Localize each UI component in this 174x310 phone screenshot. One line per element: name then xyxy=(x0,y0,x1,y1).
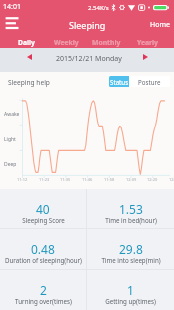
staticText: Awake xyxy=(4,111,20,118)
button[interactable]: 1 xyxy=(87,270,174,310)
staticText: 11:35 xyxy=(60,177,71,182)
staticText: Sleeping xyxy=(69,19,106,31)
button[interactable]: Monthly xyxy=(86,36,127,48)
staticText: 11:58 xyxy=(104,177,115,182)
staticText: 2.54K/s xyxy=(88,4,109,12)
button[interactable]: Menu xyxy=(0,14,24,36)
staticText: 12:09 xyxy=(126,177,137,182)
staticText: 29.8 xyxy=(119,241,143,257)
staticText: Yearly xyxy=(137,38,158,47)
staticText: Monthly xyxy=(92,38,121,47)
staticText: 40 xyxy=(36,201,50,217)
staticText: Turning over(times) xyxy=(15,297,72,305)
staticText: 0.48 xyxy=(31,241,55,257)
staticText: 14:01 xyxy=(3,2,21,12)
staticText: Deep xyxy=(4,161,17,168)
staticText: 2 xyxy=(40,282,47,298)
staticText: Weekly xyxy=(54,38,79,47)
button[interactable]: 40 xyxy=(0,189,86,228)
staticText: Light xyxy=(4,136,16,143)
button[interactable]: Daily xyxy=(6,36,46,48)
staticText: Time in bed(hour) xyxy=(105,216,157,224)
staticText: Sleeping Score xyxy=(22,216,65,224)
button[interactable]: Next day xyxy=(134,48,156,66)
staticText: 1 xyxy=(127,282,134,298)
button[interactable]: 0.48 xyxy=(0,229,86,269)
staticText: Daily xyxy=(18,38,35,47)
button[interactable]: Previous day xyxy=(18,48,40,66)
staticText: Getting up(times) xyxy=(105,297,156,305)
staticText: 2015/12/21 Monday xyxy=(56,54,122,64)
button[interactable]: 29.8 xyxy=(87,229,174,269)
button[interactable]: 1.53 xyxy=(87,189,174,228)
staticText: 11:12 xyxy=(17,177,28,182)
staticText: Home xyxy=(150,20,170,30)
staticText: 12:32 xyxy=(169,177,174,182)
staticText: 1.53 xyxy=(119,201,143,217)
staticText: Duration of sleeping(hour) xyxy=(5,256,82,264)
button[interactable]: Posture xyxy=(129,76,170,87)
button[interactable]: Weekly xyxy=(46,36,86,48)
staticText: Time into sleep(min) xyxy=(101,256,161,264)
button[interactable]: Status xyxy=(109,76,129,87)
staticText: Posture xyxy=(138,78,161,86)
button[interactable]: 2 xyxy=(0,270,86,310)
staticText: 11:46 xyxy=(82,177,93,182)
staticText: Status xyxy=(110,78,129,86)
staticText: Sleeping help xyxy=(8,78,50,87)
button[interactable]: Home xyxy=(146,14,174,36)
button[interactable]: Yearly xyxy=(127,36,168,48)
staticText: 12:20 xyxy=(147,177,158,182)
staticText: 11:23 xyxy=(39,177,50,182)
